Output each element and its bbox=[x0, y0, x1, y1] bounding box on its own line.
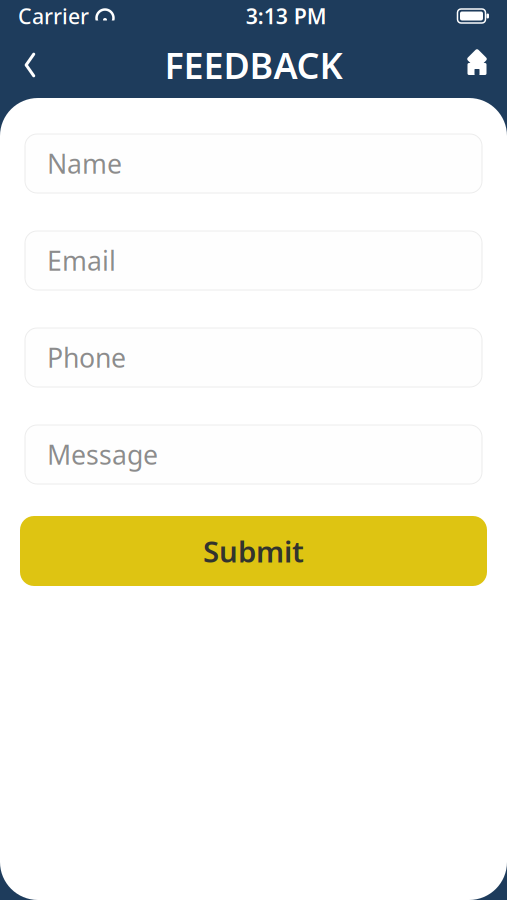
button[interactable]: Home bbox=[449, 37, 505, 93]
staticText: Message bbox=[47, 437, 158, 472]
staticText: 3:13 PM bbox=[246, 2, 327, 30]
staticText: Phone bbox=[47, 340, 126, 375]
staticText: Name bbox=[47, 146, 122, 181]
staticText: Email bbox=[47, 243, 116, 278]
staticText: Submit bbox=[203, 531, 304, 570]
staticText: Carrier bbox=[18, 2, 89, 30]
staticText: FEEDBACK bbox=[164, 41, 342, 89]
button[interactable]: Back bbox=[2, 37, 58, 93]
button[interactable]: Submit bbox=[20, 516, 487, 586]
